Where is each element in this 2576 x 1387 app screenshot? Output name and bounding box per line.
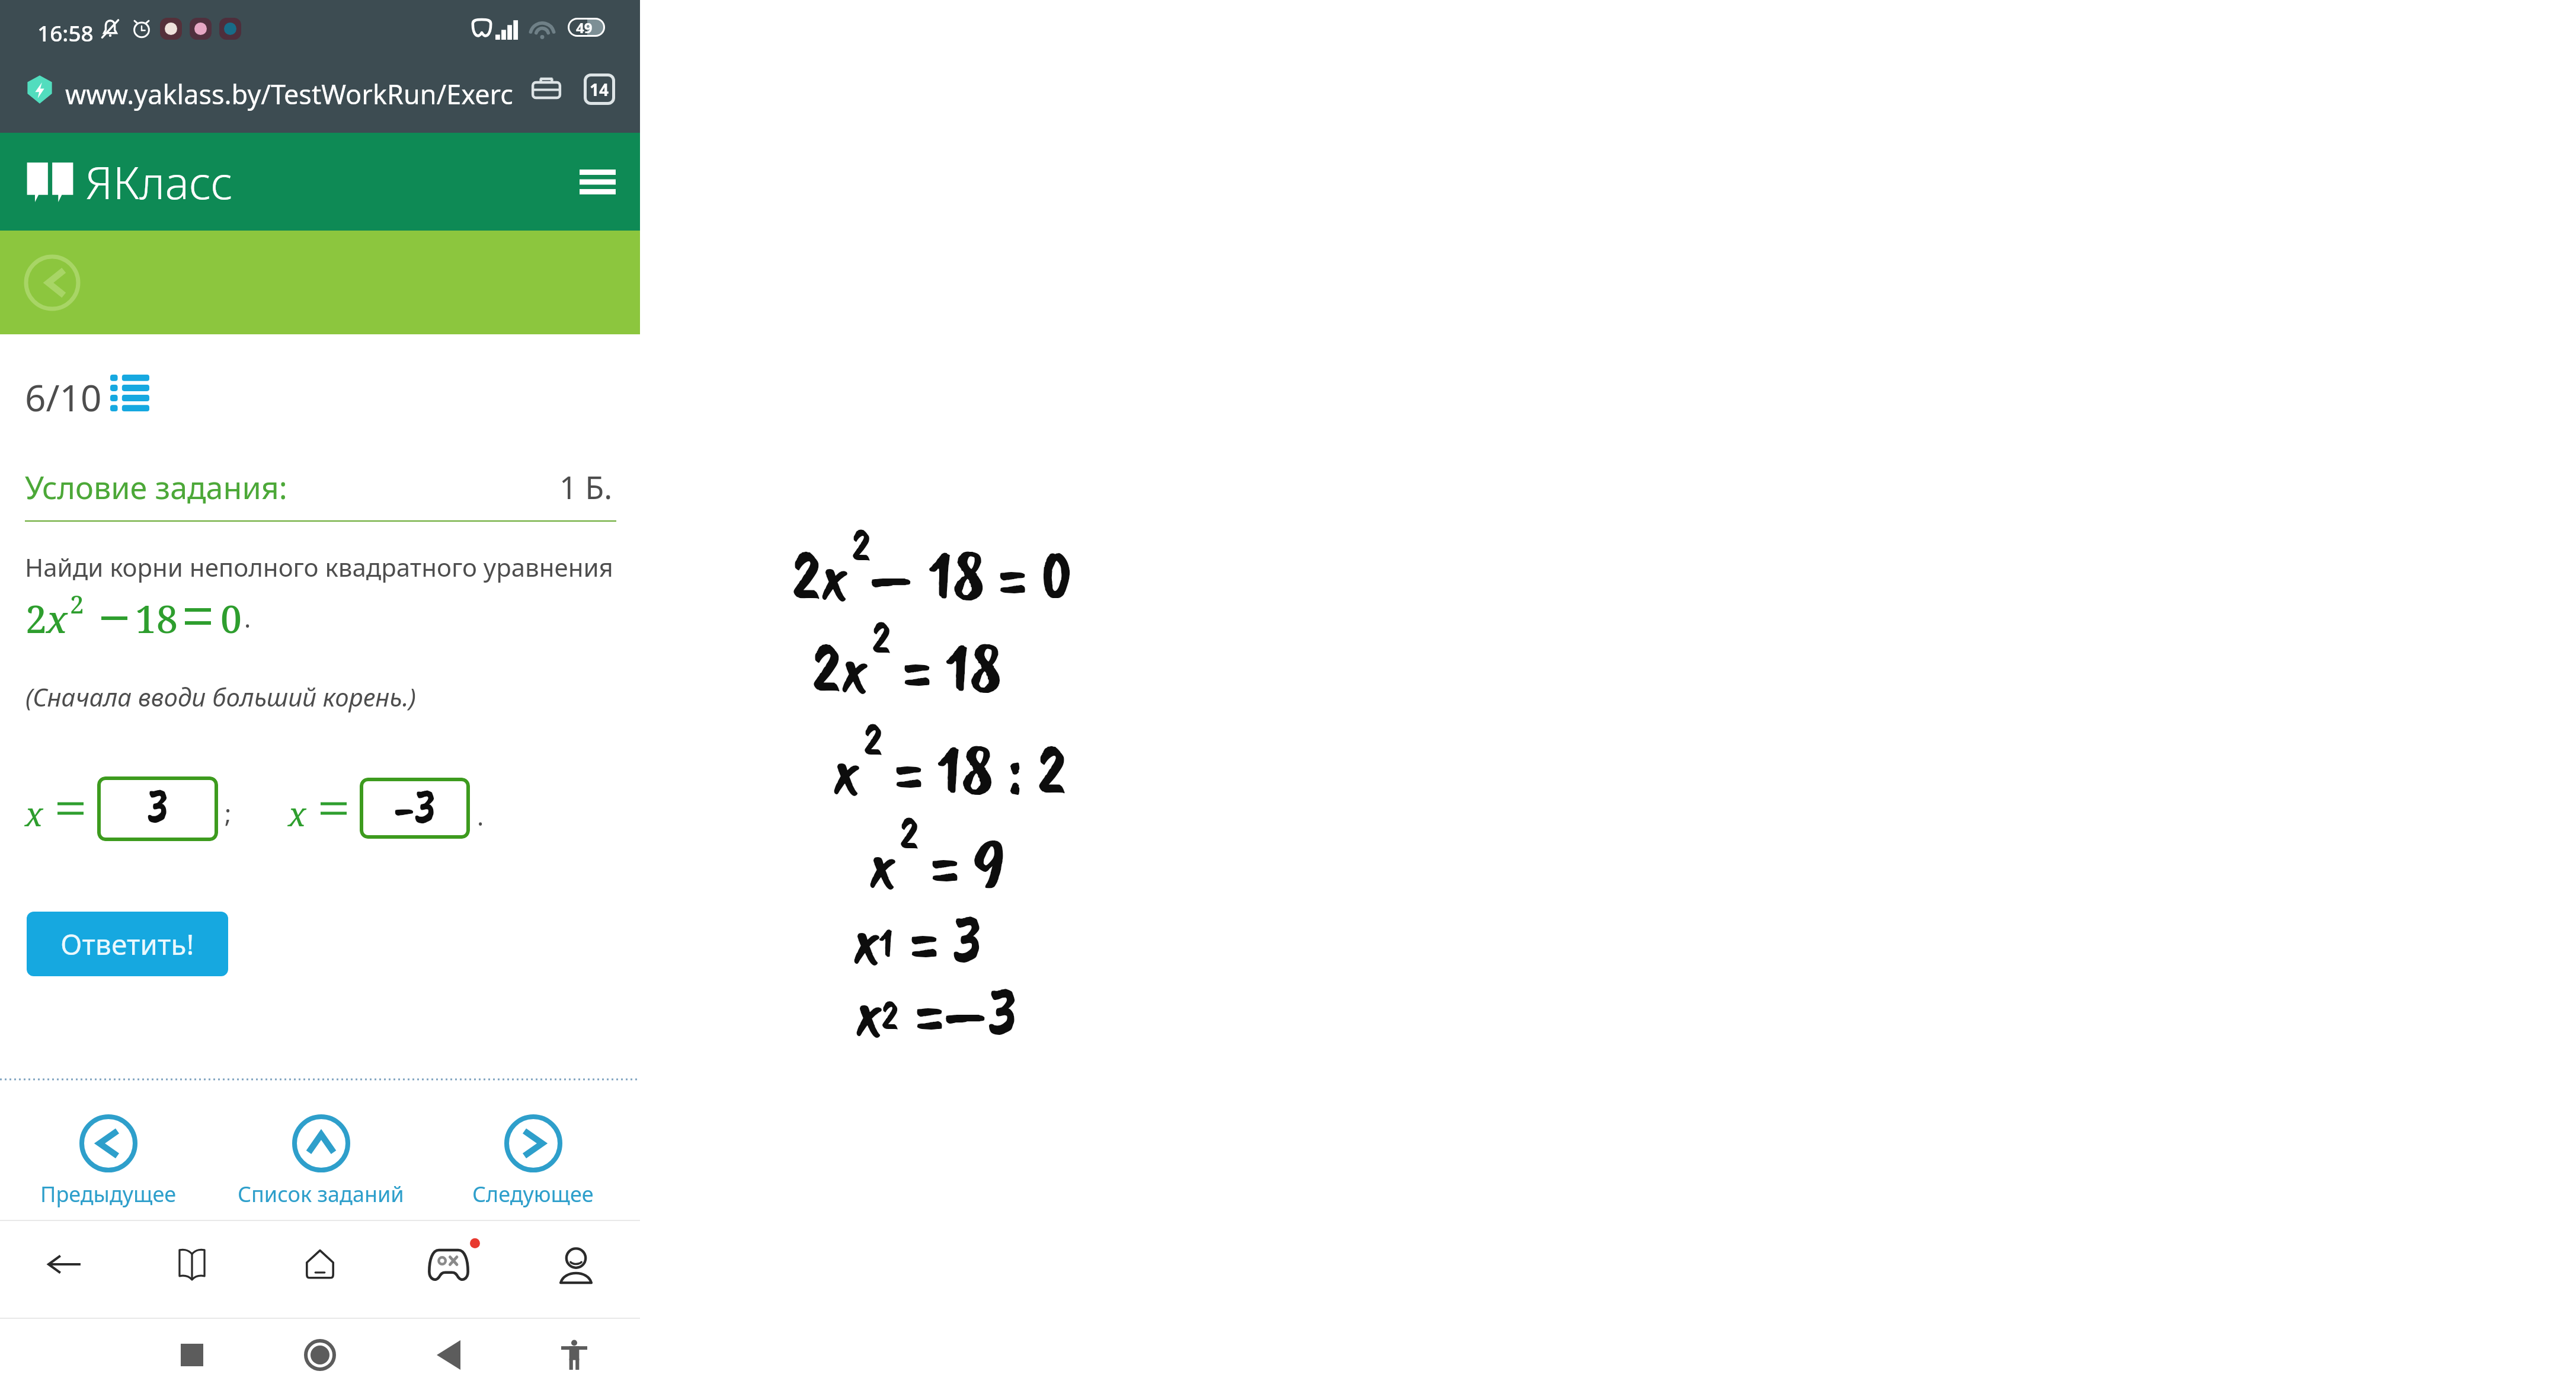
staticText: 18 bbox=[135, 593, 178, 644]
staticText: 2 bbox=[900, 804, 919, 862]
staticText: ЯКласс bbox=[85, 151, 233, 213]
button[interactable]: Back bbox=[426, 1332, 471, 1378]
button[interactable]: Answer field: 3 bbox=[97, 776, 218, 841]
staticText: 2 bbox=[863, 710, 883, 768]
staticText: 2 bbox=[70, 587, 84, 621]
staticText: 3 bbox=[147, 776, 169, 838]
staticText: 2 bbox=[25, 593, 47, 644]
staticText: = 18 : 2 bbox=[881, 726, 1067, 814]
staticText: Найди корни неполного квадратного уравне… bbox=[25, 550, 613, 584]
staticText: 14 bbox=[590, 78, 609, 101]
button[interactable]: Tabs bbox=[578, 68, 620, 110]
staticText: Предыдущее bbox=[40, 1180, 177, 1209]
button[interactable]: Recents bbox=[169, 1332, 215, 1378]
staticText: x bbox=[855, 967, 884, 1056]
staticText: = 9 bbox=[917, 819, 1006, 907]
button[interactable]: ЯКласс bbox=[26, 151, 233, 213]
staticText: . bbox=[244, 601, 251, 635]
staticText: Условие задания: bbox=[25, 466, 287, 508]
staticText: 1 bbox=[879, 916, 894, 969]
button[interactable]: Work profile bbox=[525, 67, 568, 110]
staticText: x bbox=[288, 791, 306, 836]
button[interactable]: Answer field: -3 bbox=[360, 778, 470, 839]
staticText: – 18 = 0 bbox=[869, 531, 1073, 619]
staticText: -3 bbox=[393, 778, 436, 835]
button[interactable]: Profile bbox=[545, 1235, 607, 1296]
staticText: = 3 bbox=[896, 895, 983, 983]
staticText: . bbox=[477, 799, 484, 833]
staticText: Ответить! bbox=[60, 925, 194, 963]
staticText: Следующее bbox=[472, 1180, 594, 1209]
button[interactable]: Home bbox=[297, 1332, 343, 1378]
button[interactable]: Task list bbox=[105, 369, 154, 417]
button[interactable]: Предыдущее bbox=[2, 1112, 215, 1225]
button[interactable]: Back bbox=[33, 1233, 95, 1295]
staticText: 2 bbox=[872, 608, 891, 666]
staticText: x bbox=[25, 791, 43, 836]
staticText: x bbox=[853, 895, 881, 983]
staticText: 2 bbox=[881, 989, 899, 1041]
staticText: 49 bbox=[576, 18, 593, 37]
button[interactable]: Bookmarks bbox=[161, 1233, 223, 1295]
staticText: 2x bbox=[812, 624, 869, 712]
staticText: x bbox=[46, 593, 68, 644]
staticText: x bbox=[833, 726, 861, 814]
staticText: 16:58 bbox=[37, 18, 94, 47]
staticText: 2x bbox=[792, 531, 849, 619]
button[interactable]: Accessibility bbox=[552, 1332, 597, 1378]
staticText: 1 Б. bbox=[559, 466, 613, 508]
staticText: (Сначала вводи больший корень.) bbox=[25, 680, 416, 714]
staticText: =–3 bbox=[901, 967, 1017, 1056]
staticText: www.yaklass.by/TestWorkRun/Exerc bbox=[65, 76, 513, 112]
staticText: x bbox=[869, 819, 897, 907]
button[interactable]: Home bbox=[289, 1233, 351, 1295]
staticText: = 18 bbox=[889, 624, 1001, 712]
button[interactable]: Список заданий bbox=[214, 1112, 427, 1225]
staticText: 6/10 bbox=[25, 372, 102, 422]
button[interactable]: Следующее bbox=[426, 1112, 639, 1225]
staticText: 0 bbox=[220, 593, 242, 644]
button[interactable]: Ответить! bbox=[27, 912, 228, 976]
staticText: ; bbox=[225, 796, 232, 830]
staticText: Список заданий bbox=[238, 1180, 404, 1209]
staticText: 2 bbox=[852, 516, 871, 574]
button[interactable]: Menu bbox=[569, 154, 626, 210]
button[interactable]: Back bbox=[21, 252, 83, 314]
button[interactable]: Games bbox=[418, 1234, 479, 1296]
